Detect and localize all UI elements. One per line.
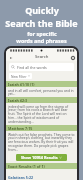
staticText: and in all will comfort, personal you an… (8, 88, 75, 96)
staticText: Exact Results (1 of 1) (8, 164, 45, 169)
button[interactable]: Isaiah 42:3 (6, 97, 77, 124)
staticText: Isaiah 41:10 (1) (8, 82, 35, 87)
staticText: Watch out for false prophets. They come … (8, 132, 75, 152)
button[interactable]: Show 10954 Results (16, 154, 67, 161)
button[interactable]: Isaiah 41:10 (1) (6, 81, 77, 96)
staticText: indeed will come up from the stump of Je… (8, 104, 75, 124)
button[interactable]: Find all the words (9, 63, 74, 71)
staticText: Isaiah 42:3 (8, 98, 28, 103)
staticText: words and phrases (16, 37, 67, 44)
staticText: for specific (27, 30, 57, 37)
staticText: Search (35, 54, 49, 60)
button[interactable]: Back (8, 55, 13, 60)
staticText: Quickly (25, 4, 59, 16)
staticText: New Filter (11, 74, 27, 78)
staticText: Matthew 7:15 (8, 126, 33, 131)
staticText: Find all the words (17, 65, 47, 70)
button[interactable]: Settings (70, 55, 75, 60)
staticText: Show 10954 Results (21, 155, 58, 160)
button[interactable]: Exact Results (1 of 1) (6, 163, 77, 174)
staticText: Search the Bible (5, 17, 78, 29)
button[interactable]: Matthew 7:15 (6, 125, 77, 152)
staticText: Galatians 5:22 (8, 175, 34, 180)
button[interactable]: New Filter (9, 73, 32, 79)
